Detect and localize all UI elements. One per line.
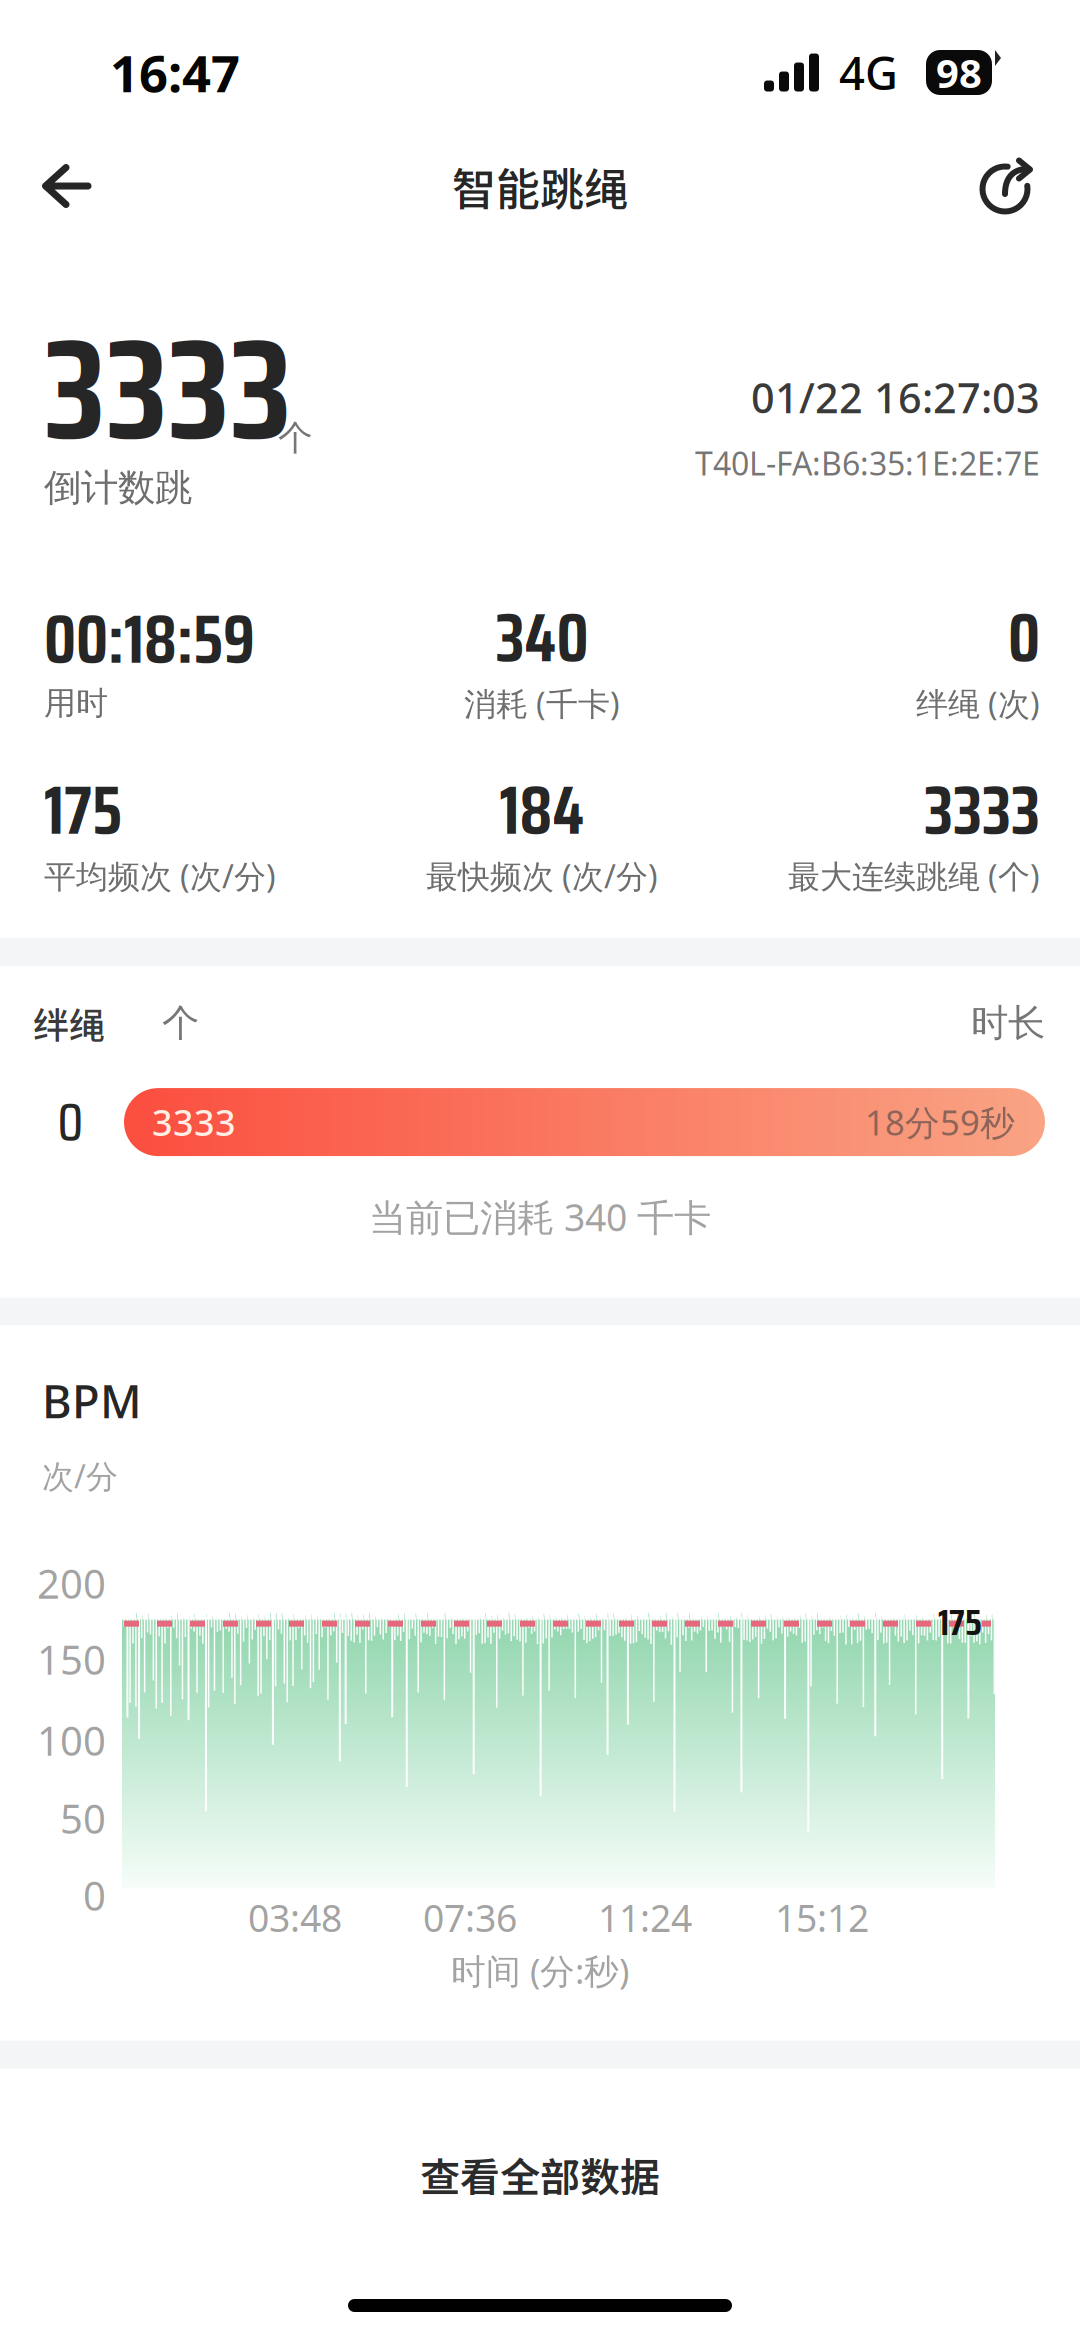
- staticText: 3333: [924, 758, 1040, 863]
- staticText: 184: [499, 758, 584, 863]
- staticText: 当前已消耗 340 千卡: [369, 1192, 711, 1242]
- staticText: 绊绳 (次): [916, 682, 1040, 724]
- button[interactable]: 查看全部数据: [0, 2069, 1080, 2262]
- staticText: 11:24: [598, 1893, 692, 1942]
- staticText: 智能跳绳: [452, 154, 628, 218]
- staticText: 07:36: [423, 1893, 517, 1942]
- staticText: 3333: [44, 278, 292, 500]
- staticText: 0: [83, 1869, 106, 1922]
- staticText: 查看全部数据: [420, 2146, 660, 2203]
- staticText: 3333: [152, 1098, 236, 1146]
- staticText: 50: [60, 1792, 106, 1845]
- staticText: 0: [1008, 585, 1040, 690]
- staticText: 次/分: [42, 1455, 118, 1497]
- staticText: 最大连续跳绳 (个): [788, 854, 1040, 897]
- staticText: 倒计数跳: [44, 465, 192, 511]
- staticText: 16:47: [110, 39, 240, 106]
- button[interactable]: Share: [962, 140, 1054, 232]
- staticText: 4G: [839, 42, 898, 103]
- staticText: 175: [44, 758, 122, 863]
- staticText: 个: [278, 417, 313, 459]
- staticText: 最快频次 (次/分): [426, 854, 658, 897]
- staticText: T40L-FA:B6:35:1E:2E:7E: [695, 442, 1040, 484]
- staticText: 03:48: [248, 1893, 342, 1942]
- staticText: 用时: [44, 684, 108, 723]
- staticText: 98: [936, 46, 982, 99]
- staticText: 175: [938, 1593, 982, 1651]
- staticText: 15:12: [775, 1893, 869, 1942]
- staticText: BPM: [42, 1371, 142, 1431]
- staticText: 0: [57, 1080, 83, 1164]
- staticText: 18分59秒: [865, 1099, 1015, 1145]
- staticText: 时长: [971, 1000, 1045, 1046]
- staticText: 01/22 16:27:03: [751, 370, 1040, 425]
- staticText: 200: [37, 1557, 106, 1610]
- staticText: 平均频次 (次/分): [44, 854, 276, 897]
- button[interactable]: Back: [21, 140, 113, 232]
- staticText: 绊绳: [33, 997, 105, 1049]
- staticText: 00:18:59: [44, 587, 255, 692]
- staticText: 消耗 (千卡): [464, 682, 620, 724]
- staticText: 个: [162, 1000, 199, 1046]
- staticText: 100: [37, 1714, 106, 1767]
- staticText: 340: [495, 585, 588, 690]
- staticText: 150: [37, 1633, 106, 1686]
- staticText: 时间 (分:秒): [451, 1948, 629, 1994]
